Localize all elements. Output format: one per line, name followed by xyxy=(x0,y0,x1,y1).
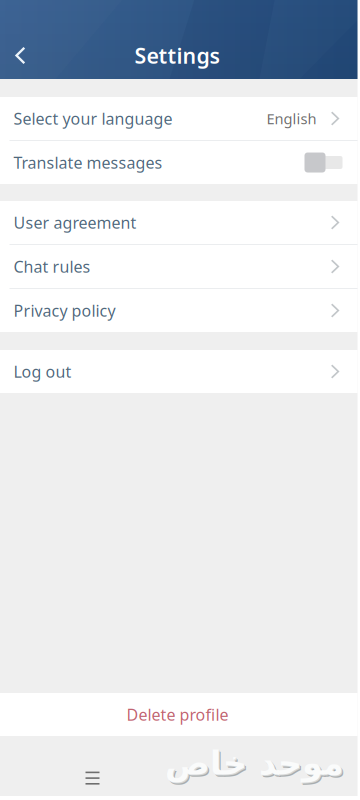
button[interactable]: User agreement xyxy=(0,201,357,244)
button[interactable]: Log out xyxy=(0,350,357,393)
button[interactable]: Menu xyxy=(74,760,110,796)
staticText: Log out xyxy=(13,361,71,382)
staticText: Settings xyxy=(134,41,220,70)
staticText: English xyxy=(266,109,316,128)
button[interactable]: Translate messages xyxy=(0,141,357,184)
staticText: User agreement xyxy=(13,212,136,233)
staticText: Chat rules xyxy=(13,256,90,277)
staticText: موحد خاص xyxy=(166,746,345,784)
button[interactable]: Back xyxy=(0,32,43,78)
button[interactable]: Delete profile xyxy=(0,693,357,736)
staticText: Translate messages xyxy=(13,152,162,173)
button[interactable]: Select your language xyxy=(0,97,357,140)
button[interactable]: Chat rules xyxy=(0,245,357,288)
staticText: Privacy policy xyxy=(13,300,115,321)
staticText: Delete profile xyxy=(126,704,228,725)
staticText: موحد خاص xyxy=(165,745,344,783)
staticText: موحد خاص xyxy=(164,744,343,782)
staticText: Select your language xyxy=(13,108,172,129)
button[interactable]: Privacy policy xyxy=(0,289,357,332)
